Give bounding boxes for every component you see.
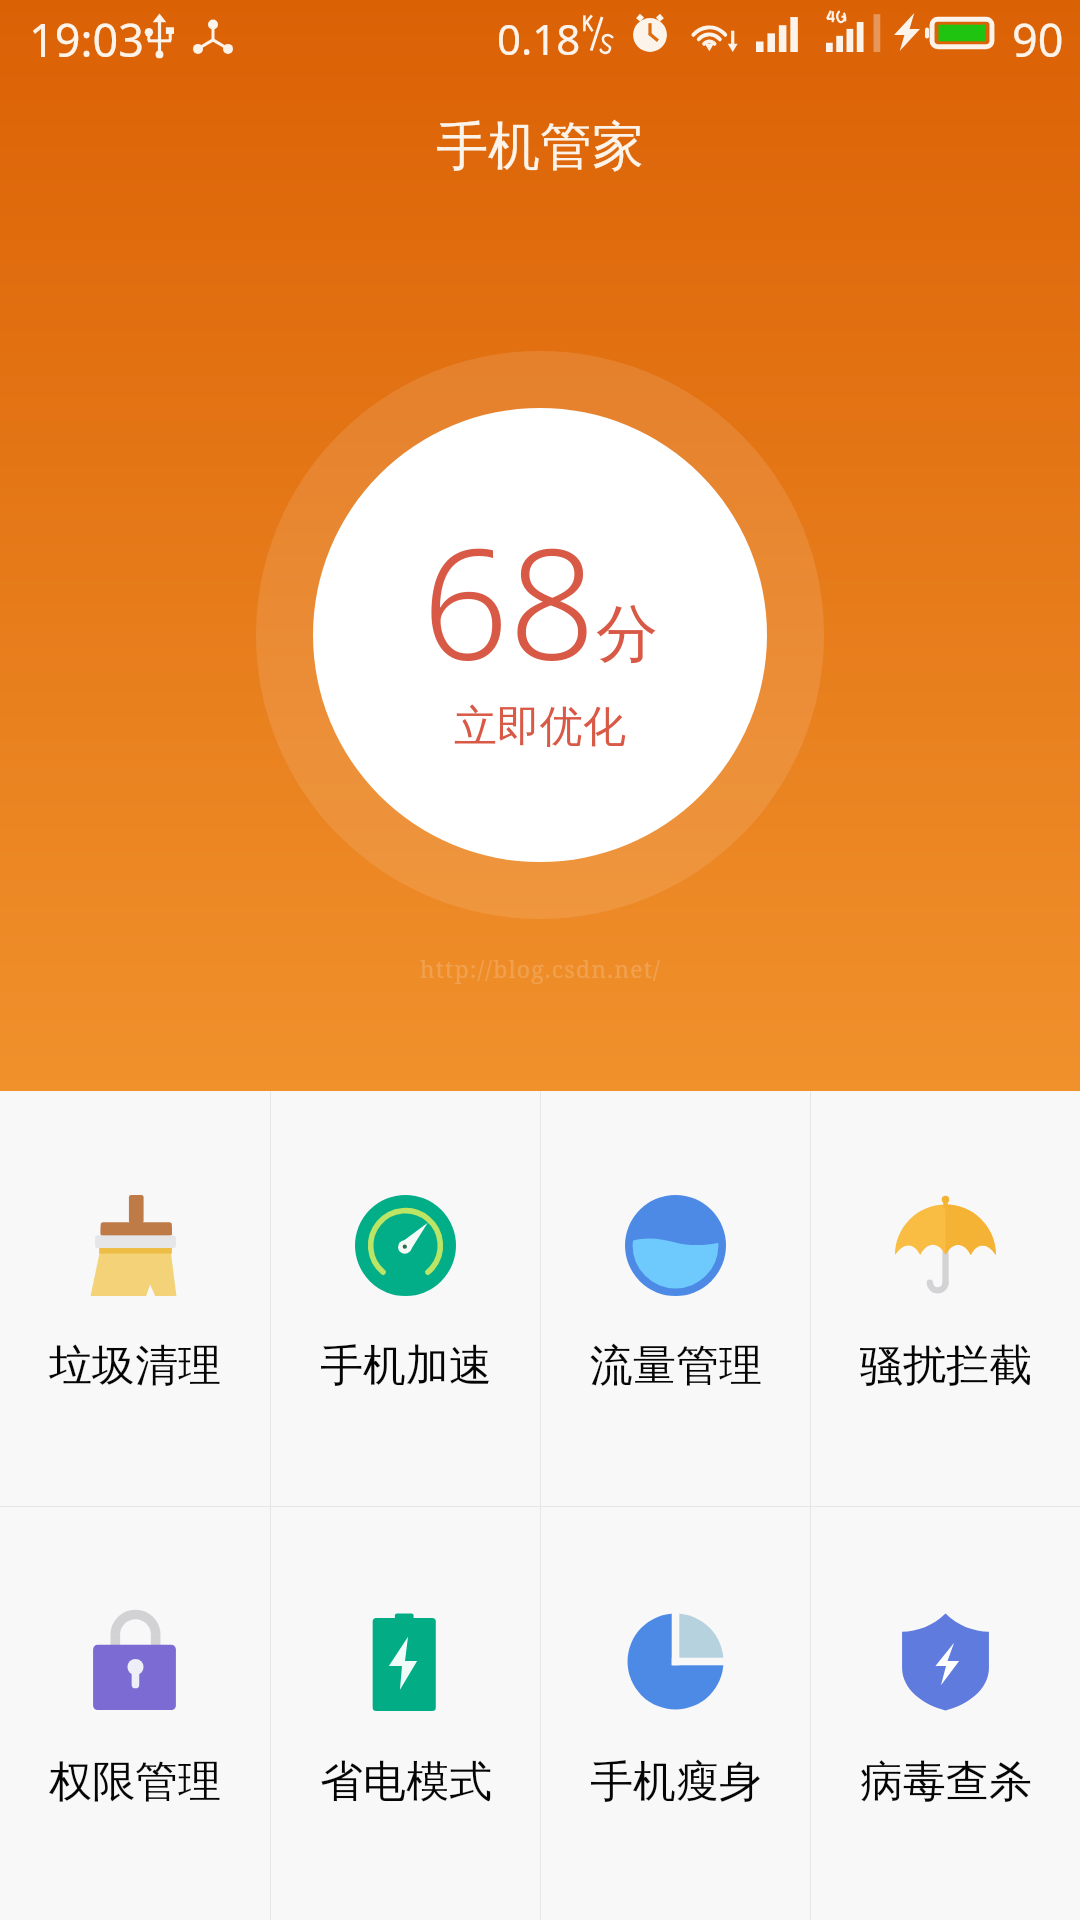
staticText: 手机管家 [436, 114, 644, 180]
button[interactable]: 垃圾清理 [0, 1091, 270, 1506]
button[interactable]: 手机加速 [271, 1091, 540, 1506]
button[interactable]: 省电模式 [271, 1507, 540, 1920]
staticText: 19:03 [29, 9, 145, 70]
staticText: http://blog.csdn.net/ [420, 953, 661, 984]
staticText: 立即优化 [454, 700, 626, 754]
staticText: 骚扰拦截 [860, 1339, 1032, 1393]
button[interactable]: 流量管理 [541, 1091, 810, 1506]
staticText: 省电模式 [320, 1755, 492, 1809]
staticText: 流量管理 [590, 1339, 762, 1393]
button[interactable]: 权限管理 [0, 1507, 270, 1920]
staticText: 68 [422, 497, 596, 704]
staticText: 垃圾清理 [49, 1339, 221, 1393]
staticText: 手机瘦身 [590, 1755, 762, 1809]
staticText: 0.18 [497, 10, 581, 67]
staticText: 手机加速 [320, 1339, 492, 1393]
staticText: 90 [1012, 9, 1064, 70]
staticText: 分 [596, 595, 658, 673]
staticText: 病毒查杀 [860, 1755, 1032, 1809]
staticText: 权限管理 [49, 1755, 221, 1809]
button[interactable]: 手机瘦身 [541, 1507, 810, 1920]
button[interactable]: 骚扰拦截 [811, 1091, 1080, 1506]
button[interactable]: 病毒查杀 [811, 1507, 1080, 1920]
button[interactable]: 立即优化 68分 [256, 351, 824, 919]
